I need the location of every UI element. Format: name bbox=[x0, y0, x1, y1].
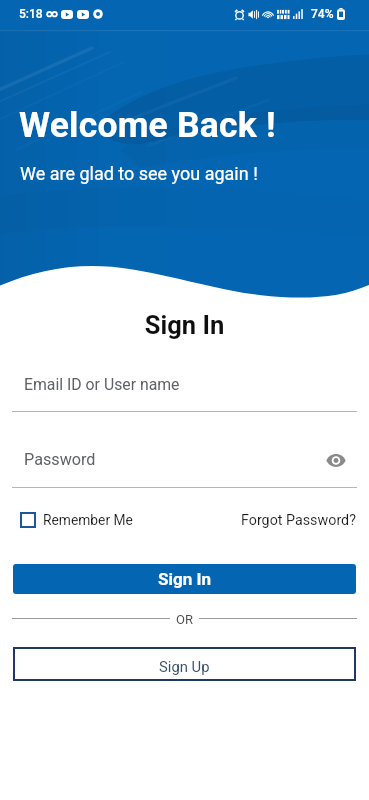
button[interactable]: Remember Me bbox=[14, 512, 133, 528]
staticText: Forgot Password? bbox=[241, 512, 356, 529]
button[interactable]: Forgot Password? bbox=[241, 512, 356, 529]
staticText: Email ID or User name bbox=[24, 375, 180, 394]
staticText: Remember Me bbox=[43, 512, 133, 528]
button[interactable]: Email ID or User name bbox=[12, 375, 357, 411]
staticText: Password bbox=[24, 450, 96, 469]
staticText: OR bbox=[176, 612, 193, 627]
staticText: Sign Up bbox=[159, 658, 210, 675]
staticText: 5:18 bbox=[19, 7, 43, 21]
button[interactable]: Show password bbox=[322, 446, 350, 474]
button[interactable]: Sign Up bbox=[13, 647, 356, 681]
staticText: Sign In bbox=[0, 310, 369, 340]
staticText: Sign In bbox=[158, 569, 211, 589]
staticText: 74% bbox=[311, 7, 334, 21]
staticText: We are glad to see you again ! bbox=[20, 163, 258, 184]
button[interactable]: Sign In bbox=[13, 564, 356, 594]
staticText: Welcome Back ! bbox=[19, 104, 276, 146]
